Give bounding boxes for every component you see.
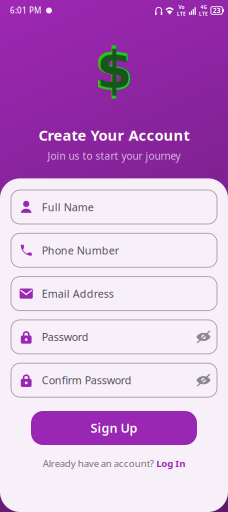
- staticText: $: [93, 36, 134, 104]
- staticText: 4G: [200, 4, 206, 10]
- staticText: 6:01 PM: [10, 5, 41, 16]
- staticText: Email Address: [42, 286, 114, 301]
- staticText: Create Your Account: [38, 125, 189, 145]
- staticText: $: [96, 40, 131, 100]
- staticText: 23: [213, 6, 221, 15]
- staticText: Already have an account?: [43, 457, 154, 470]
- staticText: LTE: [177, 10, 186, 17]
- button[interactable]: Phone Number: [11, 233, 217, 267]
- button[interactable]: Sign Up: [31, 411, 197, 445]
- button[interactable]: Confirm Password: [11, 363, 217, 397]
- staticText: Join us to start your journey: [47, 149, 180, 163]
- staticText: Vo: [178, 4, 184, 10]
- button[interactable]: Email Address: [11, 277, 217, 311]
- button[interactable]: Full Name: [11, 190, 217, 224]
- staticText: LTE: [199, 10, 208, 17]
- staticText: Confirm Password: [42, 373, 132, 387]
- button[interactable]: Already have an account?: [43, 457, 185, 470]
- staticText: Log In: [156, 457, 185, 470]
- staticText: Sign Up: [90, 419, 137, 437]
- staticText: Password: [42, 330, 89, 344]
- staticText: Phone Number: [42, 243, 119, 257]
- button[interactable]: Password: [11, 320, 217, 354]
- staticText: Full Name: [42, 200, 94, 214]
